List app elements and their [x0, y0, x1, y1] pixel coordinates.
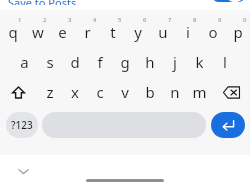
staticText: y — [134, 22, 142, 42]
staticText: n — [170, 82, 180, 102]
staticText: ?123 — [11, 118, 33, 132]
button[interactable]: i — [175, 16, 200, 47]
staticText: f — [97, 52, 103, 72]
button[interactable]: c — [87, 77, 112, 107]
staticText: j — [173, 52, 177, 72]
button[interactable]: j — [162, 47, 187, 77]
staticText: 4 — [93, 16, 97, 24]
button[interactable]: Save to Posts toggle — [213, 0, 244, 2]
button[interactable]: t — [100, 16, 125, 47]
staticText: m — [192, 82, 207, 102]
staticText: a — [20, 52, 29, 72]
button[interactable]: u — [150, 16, 175, 47]
staticText: x — [71, 82, 79, 102]
staticText: z — [46, 82, 54, 102]
staticText: w — [32, 22, 44, 42]
button[interactable]: f — [87, 47, 112, 77]
button[interactable]: x — [62, 77, 87, 107]
staticText: v — [121, 82, 129, 102]
staticText: i — [186, 22, 190, 42]
staticText: 5 — [118, 16, 122, 24]
staticText: p — [233, 22, 243, 42]
button[interactable]: Space — [42, 112, 206, 138]
staticText: 0 — [243, 16, 247, 24]
button[interactable]: y — [125, 16, 150, 47]
staticText: 2 — [43, 16, 47, 24]
staticText: 3 — [68, 16, 72, 24]
button[interactable]: g — [112, 47, 137, 77]
button[interactable]: k — [187, 47, 212, 77]
button[interactable]: v — [112, 77, 137, 107]
button[interactable]: w — [25, 16, 50, 47]
button[interactable]: Hide keyboard — [14, 162, 32, 180]
button[interactable]: a — [12, 47, 37, 77]
button[interactable]: m — [187, 77, 212, 107]
staticText: t — [110, 22, 116, 42]
button[interactable]: z — [37, 77, 62, 107]
staticText: s — [46, 52, 54, 72]
staticText: b — [145, 82, 155, 102]
button[interactable]: ?123 — [6, 112, 38, 138]
staticText: 7 — [168, 16, 172, 24]
staticText: g — [120, 52, 130, 72]
staticText: o — [208, 22, 218, 42]
staticText: 1 — [18, 16, 22, 24]
button[interactable]: b — [137, 77, 162, 107]
staticText: d — [70, 52, 80, 72]
staticText: 9 — [218, 16, 222, 24]
button[interactable]: s — [37, 47, 62, 77]
button[interactable]: Shift — [0, 77, 37, 107]
staticText: q — [8, 22, 18, 42]
staticText: 6 — [143, 16, 147, 24]
button[interactable]: l — [212, 47, 237, 77]
button[interactable]: Save to Posts — [0, 0, 250, 10]
staticText: c — [96, 82, 104, 102]
button[interactable]: Enter — [211, 112, 245, 138]
staticText: h — [145, 52, 155, 72]
staticText: l — [223, 52, 227, 72]
staticText: e — [58, 22, 67, 42]
staticText: u — [158, 22, 168, 42]
button[interactable]: d — [62, 47, 87, 77]
button[interactable]: n — [162, 77, 187, 107]
button[interactable]: e — [50, 16, 75, 47]
staticText: Save to Posts — [8, 0, 77, 5]
button[interactable]: p — [225, 16, 250, 47]
staticText: 8 — [193, 16, 197, 24]
button[interactable]: h — [137, 47, 162, 77]
staticText: r — [84, 22, 91, 42]
button[interactable]: o — [200, 16, 225, 47]
button[interactable]: Backspace — [212, 77, 250, 107]
staticText: k — [195, 52, 204, 72]
button[interactable]: q — [0, 16, 25, 47]
button[interactable]: r — [75, 16, 100, 47]
